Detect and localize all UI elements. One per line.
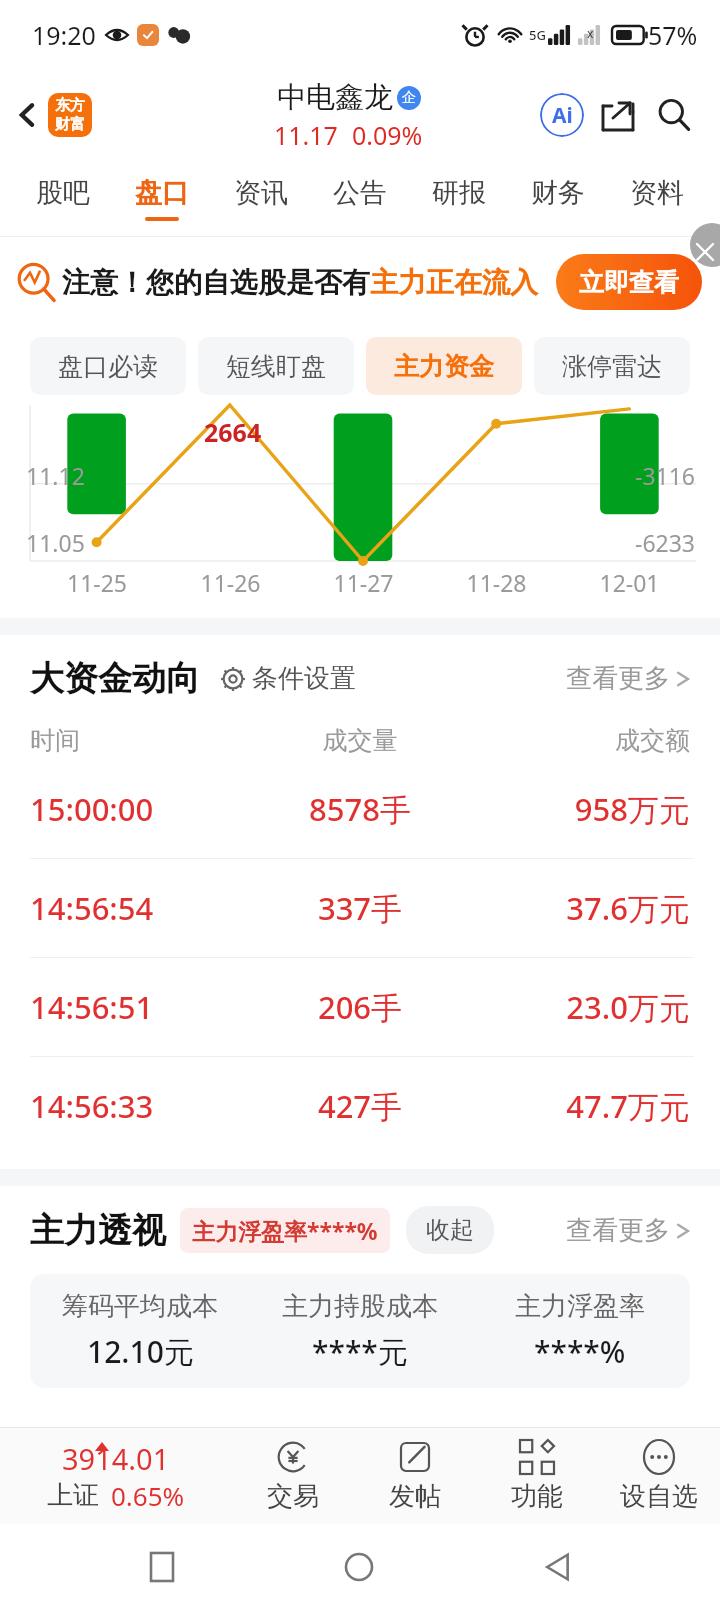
- staticText: 公告: [333, 176, 387, 210]
- button[interactable]: 发帖: [354, 1428, 476, 1524]
- staticText: 收起: [426, 1215, 474, 1245]
- button[interactable]: 资讯: [211, 160, 310, 236]
- staticText: ****%: [534, 1331, 626, 1372]
- staticText: 11-26: [164, 567, 297, 598]
- button[interactable]: 主力资金: [366, 337, 522, 395]
- button[interactable]: Home: [324, 1532, 394, 1602]
- staticText: 57%: [648, 18, 698, 52]
- staticText: 958万元: [470, 788, 690, 830]
- staticText: -3116: [635, 460, 696, 491]
- button[interactable]: 交易: [232, 1428, 354, 1524]
- button[interactable]: 股吧: [14, 160, 112, 236]
- staticText: 大资金动向: [30, 657, 200, 700]
- staticText: 37.6万元: [470, 887, 690, 929]
- button[interactable]: 15:00:00: [0, 760, 720, 858]
- staticText: 427手: [250, 1085, 470, 1127]
- staticText: 5G: [529, 26, 546, 44]
- staticText: 11.05: [26, 527, 85, 558]
- staticText: 11.12: [26, 460, 85, 491]
- staticText: 时间: [30, 725, 250, 756]
- staticText: 12-01: [563, 567, 696, 598]
- button[interactable]: East Money home: [48, 93, 92, 137]
- button[interactable]: 注意！: [0, 237, 720, 327]
- staticText: 47.7万元: [470, 1085, 690, 1127]
- staticText: 3914.01: [62, 1439, 170, 1478]
- button[interactable]: Back: [0, 87, 56, 143]
- staticText: 功能: [511, 1480, 563, 1513]
- staticText: 东方: [55, 96, 85, 115]
- button[interactable]: 条件设置: [220, 662, 356, 695]
- staticText: ****元: [312, 1331, 408, 1372]
- button[interactable]: 查看更多: [566, 662, 690, 695]
- staticText: 财务: [531, 176, 585, 210]
- staticText: 条件设置: [252, 662, 356, 695]
- staticText: 0.09%: [352, 118, 423, 152]
- staticText: 盘口必读: [58, 351, 158, 382]
- button[interactable]: 涨停雷达: [534, 337, 690, 395]
- staticText: 11-27: [297, 567, 430, 598]
- button[interactable]: Back: [522, 1532, 592, 1602]
- button[interactable]: Share: [590, 87, 646, 143]
- button[interactable]: 3914.01: [0, 1428, 232, 1524]
- staticText: 盘口: [135, 176, 189, 210]
- staticText: 337手: [250, 887, 470, 929]
- staticText: 12.10元: [87, 1331, 194, 1372]
- staticText: 涨停雷达: [562, 351, 662, 382]
- staticText: 2664: [204, 415, 262, 449]
- button[interactable]: 盘口: [112, 160, 211, 236]
- staticText: 14:56:51: [30, 986, 250, 1028]
- staticText: 交易: [267, 1480, 319, 1513]
- staticText: 23.0万元: [470, 986, 690, 1028]
- staticText: 发帖: [389, 1480, 441, 1513]
- staticText: 14:56:54: [30, 887, 250, 929]
- staticText: 查看更多: [566, 1214, 670, 1247]
- staticText: 11-25: [30, 567, 164, 598]
- button[interactable]: 研报: [409, 160, 508, 236]
- button[interactable]: AI assistant: [534, 87, 590, 143]
- staticText: 中电鑫龙: [277, 79, 393, 116]
- staticText: 设自选: [620, 1480, 698, 1513]
- staticText: 注意！: [62, 265, 146, 300]
- staticText: 资讯: [234, 176, 288, 210]
- staticText: 您的自选股是否有: [146, 265, 370, 300]
- button[interactable]: Close: [690, 223, 720, 267]
- staticText: 0.65%: [111, 1478, 185, 1513]
- staticText: 企: [402, 89, 416, 107]
- staticText: 成交额: [470, 725, 690, 756]
- staticText: -6233: [635, 527, 696, 558]
- staticText: 短线盯盘: [226, 351, 326, 382]
- staticText: 主力浮盈率: [515, 1290, 645, 1323]
- staticText: 主力正在流入: [370, 265, 538, 300]
- staticText: 成交量: [250, 725, 470, 756]
- button[interactable]: 查看更多: [566, 1214, 690, 1247]
- staticText: 8578手: [250, 788, 470, 830]
- button[interactable]: 14:56:54: [0, 859, 720, 957]
- button[interactable]: 立即查看: [556, 254, 702, 310]
- staticText: 立即查看: [579, 267, 679, 298]
- button[interactable]: 财务: [508, 160, 607, 236]
- staticText: 筹码平均成本: [62, 1290, 218, 1323]
- staticText: 研报: [432, 176, 486, 210]
- button[interactable]: 公告: [310, 160, 409, 236]
- button[interactable]: 短线盯盘: [198, 337, 354, 395]
- button[interactable]: 盘口必读: [30, 337, 186, 395]
- staticText: 11-28: [430, 567, 563, 598]
- staticText: 14:56:33: [30, 1085, 250, 1127]
- button[interactable]: 资料: [607, 160, 706, 236]
- staticText: 11.17: [274, 118, 338, 152]
- button[interactable]: Recents: [127, 1532, 197, 1602]
- staticText: Ai: [552, 101, 573, 130]
- button[interactable]: Search: [646, 87, 702, 143]
- button[interactable]: 主力浮盈率****%: [180, 1208, 390, 1253]
- button[interactable]: 14:56:51: [0, 958, 720, 1056]
- staticText: 主力浮盈率****%: [192, 1215, 378, 1246]
- staticText: 主力透视: [30, 1209, 166, 1252]
- button[interactable]: 功能: [476, 1428, 598, 1524]
- staticText: 上证: [47, 1479, 99, 1512]
- staticText: 股吧: [36, 176, 90, 210]
- button[interactable]: 收起: [406, 1206, 494, 1254]
- button[interactable]: 14:56:33: [0, 1057, 720, 1155]
- staticText: 19:20: [32, 18, 96, 52]
- button[interactable]: 设自选: [598, 1428, 720, 1524]
- staticText: 206手: [250, 986, 470, 1028]
